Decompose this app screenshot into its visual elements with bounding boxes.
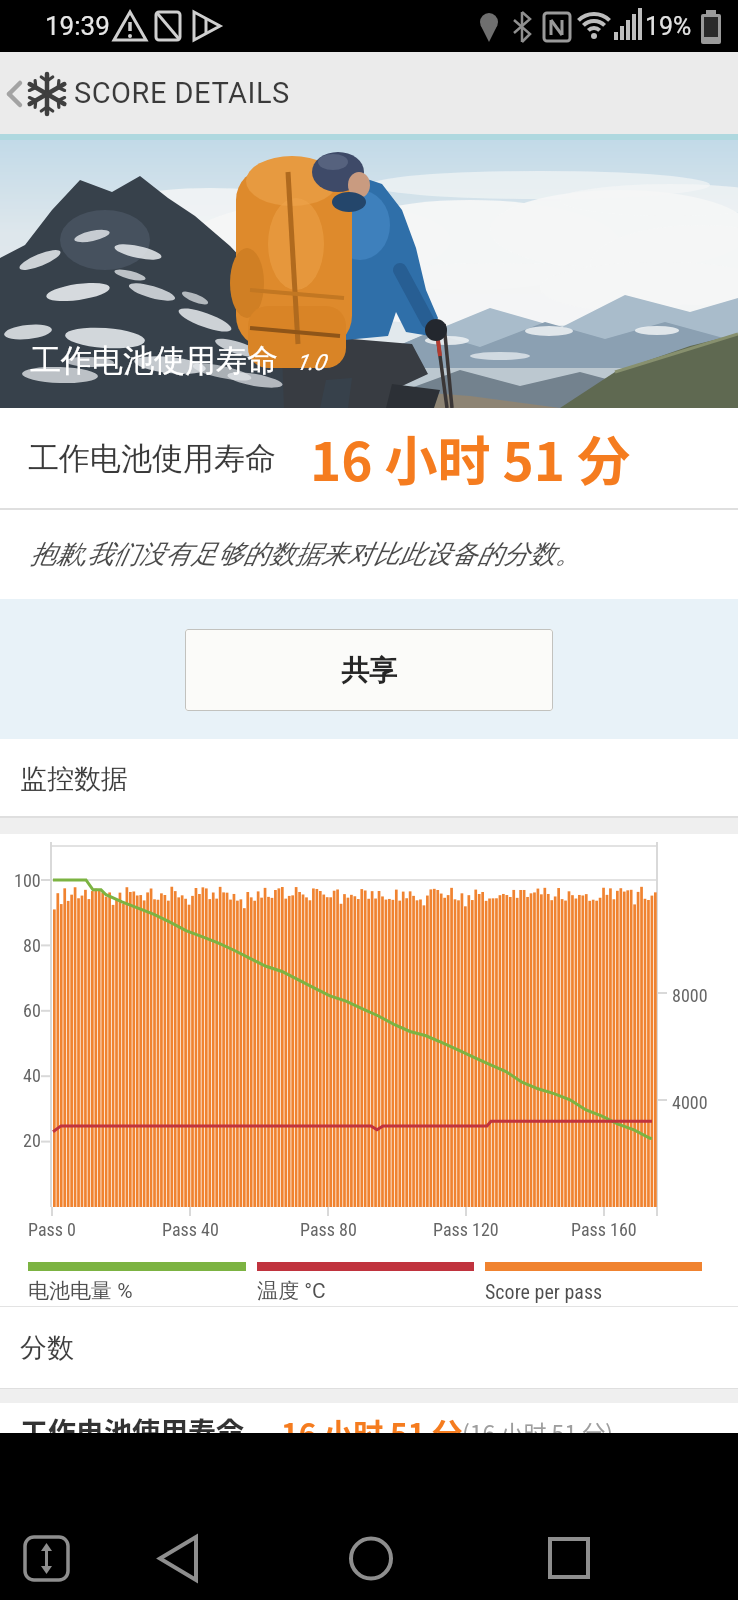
staticText: SCORE DETAILS: [74, 76, 290, 110]
button[interactable]: 工作电池使用寿命: [0, 1403, 738, 1433]
staticText: Score per pass: [485, 1280, 603, 1303]
button[interactable]: 共享: [185, 629, 553, 711]
staticText: 分数: [20, 1331, 74, 1365]
button[interactable]: [0, 1433, 184, 1600]
staticText: 19%: [645, 12, 692, 41]
staticText: 抱歉,我们没有足够的数据来对比此设备的分数。: [30, 538, 581, 571]
staticText: Pass 80: [300, 1219, 357, 1240]
staticText: 100: [14, 870, 41, 891]
button[interactable]: [184, 1433, 368, 1600]
staticText: 4000: [672, 1092, 708, 1113]
staticText: 监控数据: [20, 762, 128, 796]
staticText: 40: [23, 1065, 41, 1086]
staticText: 8000: [672, 985, 708, 1006]
staticText: 80: [23, 935, 41, 956]
staticText: Pass 40: [162, 1219, 219, 1240]
staticText: 工作电池使用寿命: [20, 1411, 245, 1433]
staticText: 工作电池使用寿命: [30, 341, 278, 380]
staticText: 60: [23, 1000, 41, 1021]
staticText: 19:39: [45, 11, 110, 41]
staticText: Pass 120: [433, 1219, 499, 1240]
staticText: 电池电量 %: [28, 1278, 133, 1304]
staticText: 20: [23, 1130, 41, 1151]
staticText: Pass 0: [28, 1219, 76, 1240]
staticText: 工作电池使用寿命: [28, 439, 276, 478]
staticText: 温度 °C: [257, 1278, 326, 1304]
staticText: (16 小时 51 分): [462, 1415, 614, 1433]
staticText: 16 小时 51 分: [310, 420, 631, 497]
staticText: 16 小时 51 分: [281, 1410, 463, 1433]
staticText: Pass 160: [571, 1219, 637, 1240]
staticText: 共享: [341, 653, 397, 688]
button[interactable]: [368, 1433, 553, 1600]
staticText: 1.0: [296, 350, 326, 376]
button[interactable]: [553, 1433, 738, 1600]
button[interactable]: [0, 52, 34, 134]
